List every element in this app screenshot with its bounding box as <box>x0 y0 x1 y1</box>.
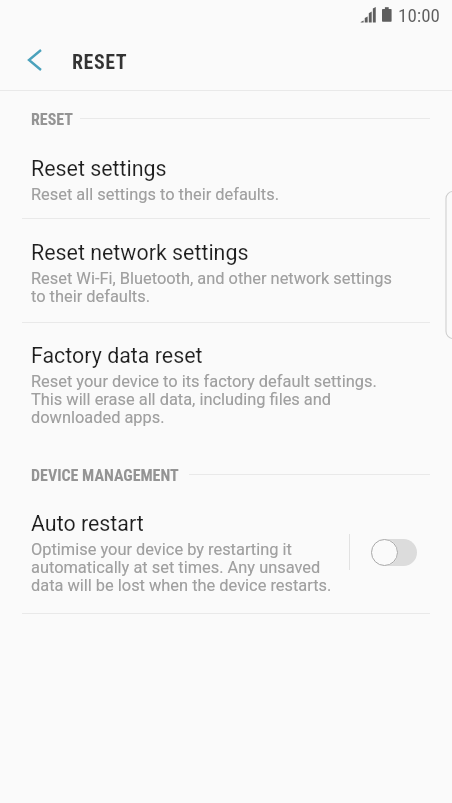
button[interactable]: Reset network settings <box>0 236 452 315</box>
button[interactable]: Reset settings <box>0 152 452 213</box>
staticText: Reset Wi-Fi, Bluetooth, and other networ… <box>31 269 392 305</box>
staticText: 10:00 <box>398 4 440 26</box>
staticText: Reset your device to its factory default… <box>31 372 377 426</box>
staticText: Factory data reset <box>31 343 203 368</box>
button[interactable]: Navigate up <box>12 37 58 83</box>
staticText: DEVICE MANAGEMENT <box>31 466 179 485</box>
staticText: Auto restart <box>31 511 144 536</box>
staticText: RESET <box>31 110 74 129</box>
staticText: Reset all settings to their defaults. <box>31 185 279 203</box>
staticText: Reset settings <box>31 156 167 181</box>
button[interactable]: Factory data reset <box>0 339 452 436</box>
staticText: Reset network settings <box>31 240 249 265</box>
staticText: Optimise your device by restarting it au… <box>31 540 332 594</box>
staticText: RESET <box>72 50 128 73</box>
button[interactable]: Auto restart <box>358 520 430 584</box>
button[interactable]: Auto restart <box>0 507 452 604</box>
